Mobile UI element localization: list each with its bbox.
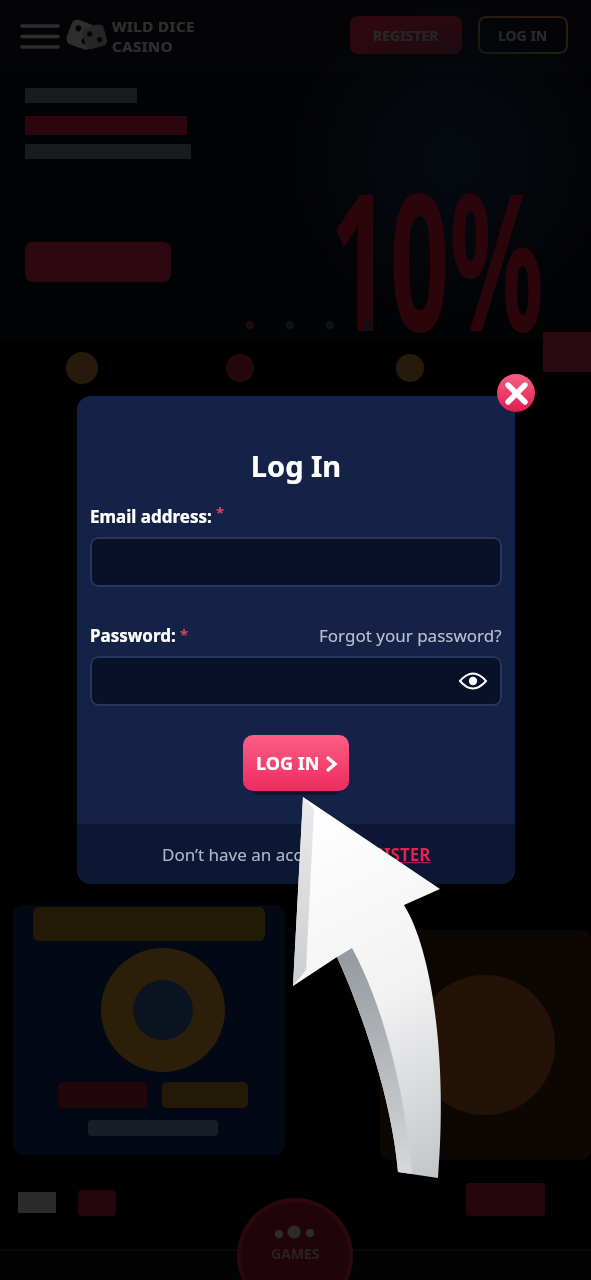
staticText: WILD DICE <box>112 16 195 36</box>
button[interactable]: GAMES <box>237 1198 353 1280</box>
staticText: LOG IN <box>498 26 548 45</box>
button[interactable]: Forgot your password? <box>319 624 502 647</box>
staticText: CASINO <box>112 36 174 56</box>
button[interactable]: LOG IN <box>243 735 349 791</box>
staticText: 10% <box>330 128 544 387</box>
staticText: REGISTER <box>373 26 439 45</box>
staticText: * <box>176 624 189 644</box>
staticText: Log In <box>77 446 515 485</box>
staticText: Password: <box>90 624 176 647</box>
staticText: GAMES <box>271 1244 320 1263</box>
button[interactable] <box>497 374 535 412</box>
button[interactable]: LOG IN <box>478 16 568 54</box>
button[interactable]: Don’t have an account? <box>162 843 431 866</box>
button[interactable] <box>90 537 502 587</box>
button[interactable] <box>25 242 171 282</box>
button[interactable] <box>22 24 58 50</box>
staticText: * <box>212 502 225 522</box>
staticText: Email address: <box>90 505 212 528</box>
staticText: REGISTER <box>351 843 431 866</box>
staticText: Don’t have an account? <box>162 843 351 866</box>
staticText: LOG IN <box>256 751 320 776</box>
button[interactable] <box>380 930 591 1160</box>
button[interactable] <box>90 656 502 706</box>
button[interactable] <box>13 905 285 1155</box>
button[interactable]: REGISTER <box>350 16 462 54</box>
